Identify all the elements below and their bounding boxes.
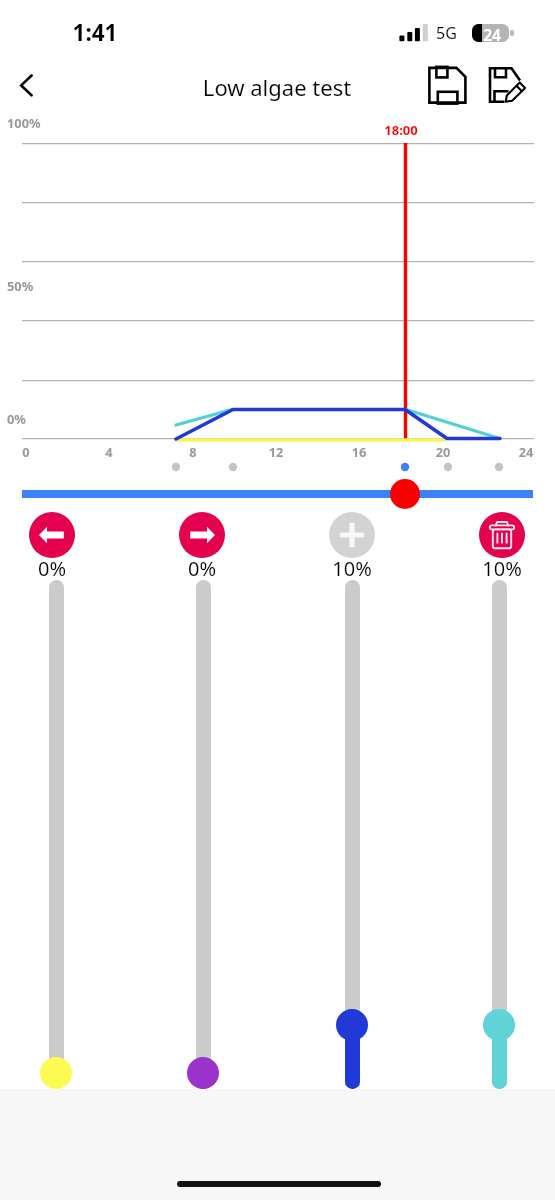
- staticText: 0%: [162, 555, 242, 582]
- staticText: 24: [506, 443, 546, 460]
- staticText: 0%: [12, 555, 92, 582]
- button[interactable]: Save: [424, 62, 470, 108]
- staticText: 16: [339, 443, 379, 460]
- button[interactable]: Cyan channel level 10%: [483, 580, 515, 1089]
- staticText: Low algae test: [177, 72, 377, 102]
- staticText: 10%: [462, 555, 542, 582]
- button[interactable]: Shift selection left, 0%: [12, 512, 92, 579]
- button[interactable]: Increase level, 10%: [312, 512, 392, 579]
- staticText: 4: [89, 443, 129, 460]
- staticText: 100%: [7, 114, 57, 131]
- button[interactable]: Violet channel level 0%: [187, 580, 219, 1089]
- staticText: 0: [6, 443, 46, 460]
- button[interactable]: Shift selection right, 0%: [162, 512, 242, 579]
- button[interactable]: Royal blue channel level 10%: [336, 580, 368, 1089]
- staticText: 0%: [7, 410, 57, 427]
- staticText: 24: [479, 24, 505, 45]
- button[interactable]: Warm white channel level 0%: [40, 580, 72, 1089]
- staticText: 18:00: [376, 121, 426, 139]
- staticText: 50%: [7, 277, 57, 294]
- staticText: 5G: [436, 22, 466, 44]
- button[interactable]: Delete point, 10%: [462, 512, 542, 579]
- button[interactable]: Time scrubber: [22, 490, 533, 498]
- button[interactable]: Current time handle: [390, 479, 420, 509]
- staticText: 10%: [312, 555, 392, 582]
- staticText: 8: [173, 443, 213, 460]
- staticText: 20: [423, 443, 463, 460]
- button[interactable]: Back: [4, 63, 48, 107]
- button[interactable]: Save as: [483, 62, 529, 108]
- staticText: 1:41: [70, 17, 120, 48]
- staticText: 12: [256, 443, 296, 460]
